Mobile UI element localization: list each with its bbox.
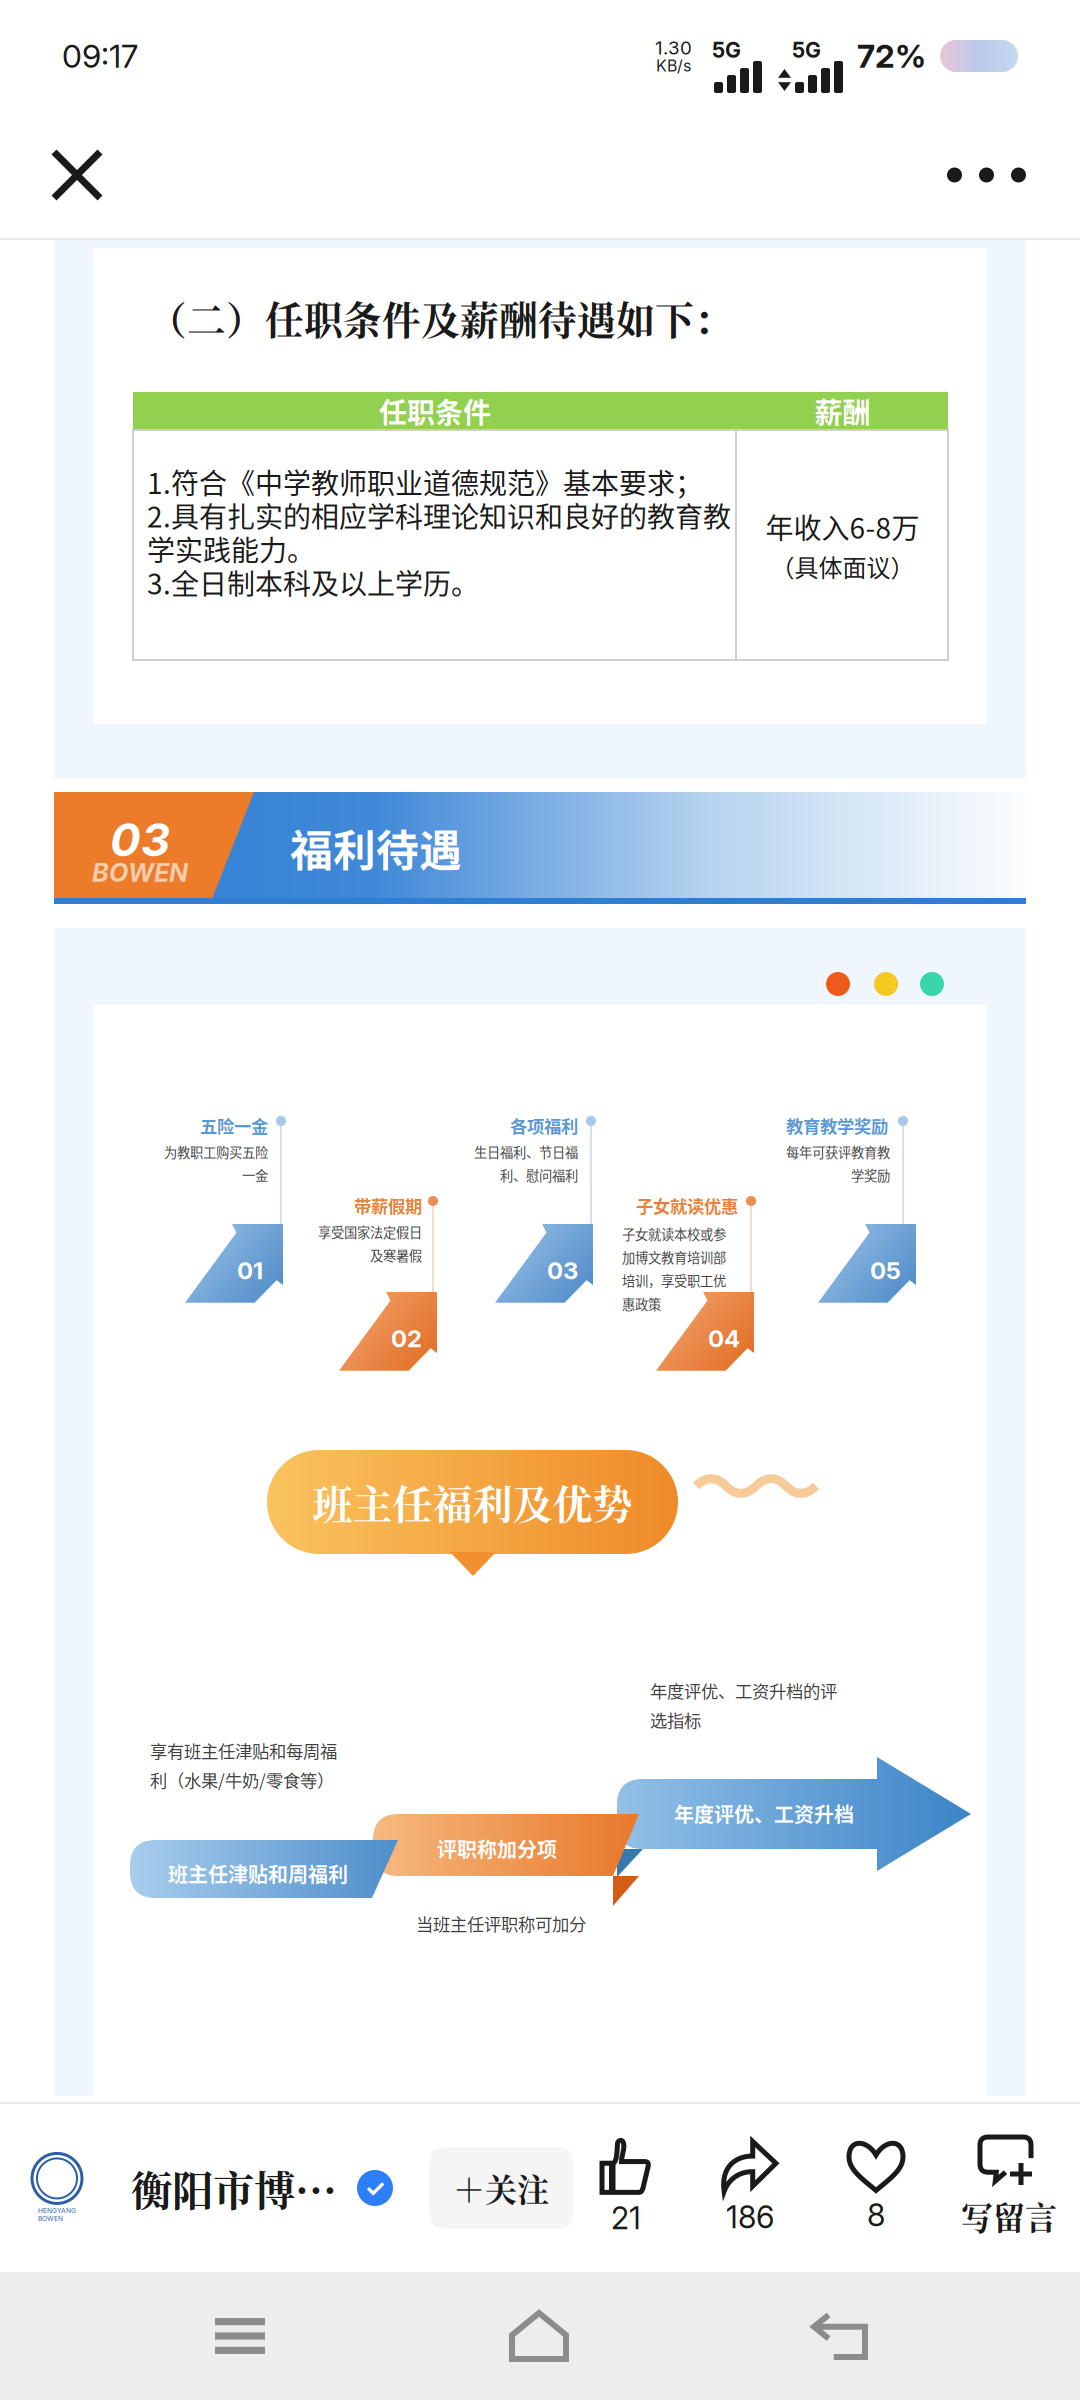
staticText: 09:17 [62, 37, 138, 75]
staticText: 衡阳市博··· [131, 2158, 337, 2218]
staticText: 年收入6-8万 [765, 506, 919, 547]
staticText: 带薪假期 [354, 1193, 422, 1218]
button[interactable]: More options [917, 137, 1056, 212]
staticText: 评职称加分项 [437, 1834, 557, 1863]
button[interactable]: 186 [703, 2140, 797, 2235]
staticText: 利（水果/牛奶/零食等） [150, 1767, 334, 1792]
button[interactable]: 8 [829, 2142, 923, 2233]
staticText: 享受国家法定假日 [318, 1222, 422, 1241]
staticText: 生日福利、节日福 [474, 1142, 578, 1161]
button[interactable]: 21 [581, 2139, 671, 2236]
staticText: 子女就读本校或参 [622, 1224, 726, 1243]
staticText: 及寒暑假 [370, 1245, 422, 1265]
staticText: 任职条件 [379, 391, 491, 431]
staticText: 72% [857, 37, 926, 75]
staticText: 年度评优、工资升档的评 [650, 1678, 837, 1703]
button[interactable]: Back [781, 2283, 897, 2389]
staticText: 培训，享受职工优 [622, 1271, 726, 1290]
staticText: 5G [792, 37, 821, 63]
staticText: 为教职工购买五险 [164, 1142, 268, 1161]
staticText: 186 [726, 2198, 774, 2235]
staticText: 利、慰问福利 [500, 1165, 578, 1185]
staticText: 教育教学奖励 [786, 1113, 888, 1138]
staticText: BOWEN [92, 857, 188, 888]
staticText: 子女就读优惠 [636, 1193, 738, 1218]
staticText: 惠政策 [622, 1294, 661, 1313]
staticText: 福利待遇 [290, 817, 462, 879]
staticText: 年度评优、工资升档 [674, 1799, 854, 1828]
staticText: 学实践能力。 [147, 528, 315, 569]
button[interactable]: Home [480, 2281, 598, 2391]
staticText: ✓ [364, 2173, 385, 2202]
staticText: 当班主任评职称可加分 [416, 1911, 586, 1936]
staticText: 一金 [242, 1165, 268, 1185]
staticText: 05 [870, 1256, 901, 1285]
staticText: ＋关注 [453, 2165, 549, 2211]
staticText: 薪酬 [814, 391, 870, 431]
staticText: 3.全日制本科及以上学历。 [147, 562, 479, 602]
staticText: 1.符合《中学教师职业道德规范》基本要求； [147, 461, 703, 502]
staticText: 2.具有扎实的相应学科理论知识和良好的教育教 [147, 495, 731, 535]
staticText: 8 [867, 2196, 885, 2233]
staticText: 04 [708, 1324, 740, 1353]
staticText: 03 [547, 1256, 578, 1285]
staticText: 五险一金 [200, 1113, 268, 1138]
staticText: 每年可获评教育教 [786, 1142, 890, 1161]
staticText: 5G [712, 37, 741, 63]
button[interactable]: 写留言 [949, 2137, 1069, 2239]
staticText: 享有班主任津贴和每周福 [150, 1738, 337, 1763]
staticText: KB/s [656, 56, 691, 75]
staticText: 选指标 [650, 1707, 701, 1732]
staticText: 学奖励 [851, 1165, 890, 1185]
staticText: （二）任职条件及薪酬待遇如下： [148, 290, 733, 346]
staticText: （具体面议） [770, 549, 914, 584]
button[interactable]: Close [26, 124, 128, 226]
staticText: 各项福利 [510, 1113, 578, 1138]
staticText: 1.30 [655, 36, 692, 59]
staticText: 班主任津贴和周福利 [168, 1859, 348, 1888]
staticText: 01 [237, 1256, 263, 1285]
staticText: 21 [611, 2199, 641, 2236]
staticText: 02 [391, 1324, 422, 1353]
staticText: 写留言 [961, 2193, 1057, 2239]
button[interactable]: ＋关注 [429, 2147, 573, 2229]
staticText: 加博文教育培训部 [622, 1247, 726, 1267]
button[interactable]: Recent apps [183, 2286, 297, 2386]
staticText: 03 [110, 812, 170, 867]
staticText: HENGYANG BOWEN [38, 2206, 76, 2222]
staticText: 班主任福利及优势 [312, 1473, 632, 1531]
